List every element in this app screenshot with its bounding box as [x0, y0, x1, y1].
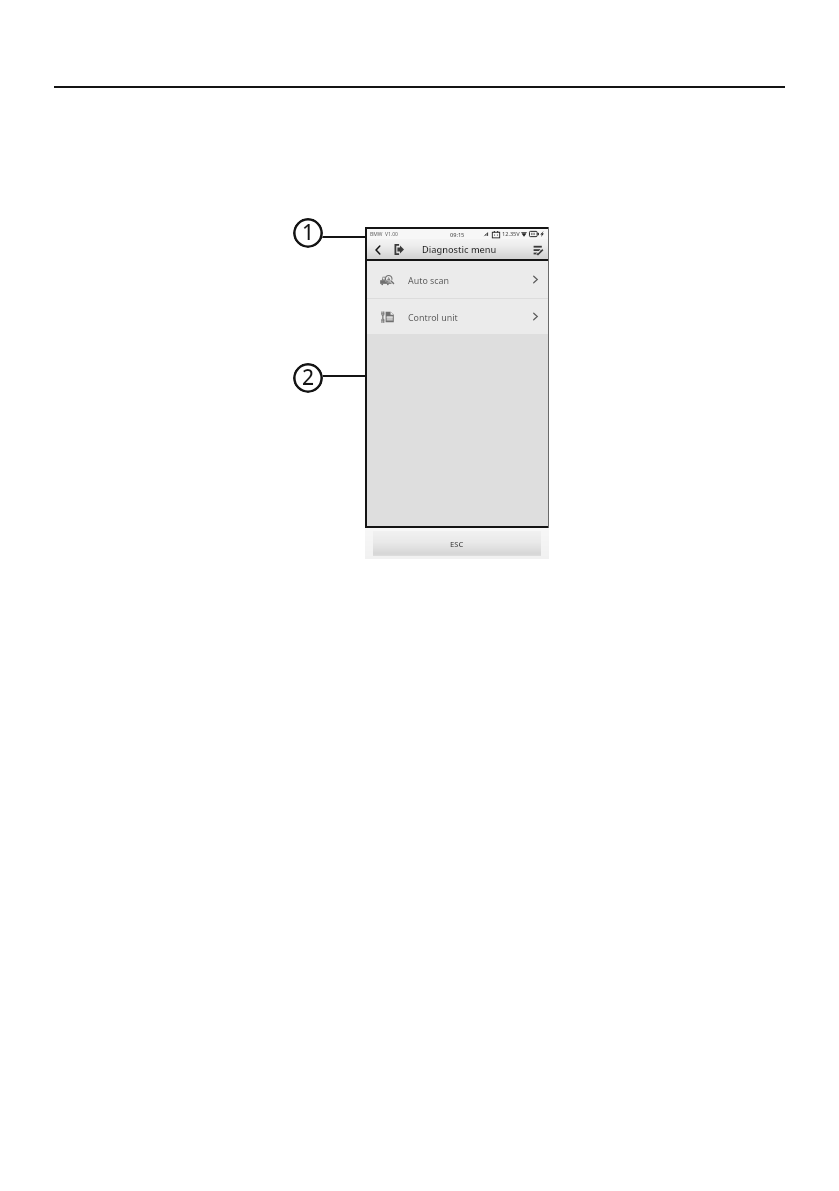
- staticText: 2: [302, 363, 315, 392]
- staticText: 09:15: [450, 231, 465, 239]
- staticText: Diagnostic menu: [422, 243, 497, 256]
- staticText: 12.35V: [502, 230, 520, 238]
- button[interactable]: Auto scan: [367, 261, 548, 298]
- button[interactable]: Exit: [388, 239, 409, 260]
- staticText: Control unit: [408, 311, 458, 323]
- staticText: 1: [302, 218, 315, 247]
- button[interactable]: Notes: [528, 239, 547, 260]
- staticText: BMW V1.00: [370, 231, 398, 238]
- button[interactable]: Back: [368, 239, 387, 260]
- staticText: Auto scan: [408, 274, 450, 286]
- staticText: ESC: [450, 539, 464, 549]
- button[interactable]: Control unit: [367, 299, 548, 334]
- button[interactable]: ESC: [373, 531, 541, 556]
